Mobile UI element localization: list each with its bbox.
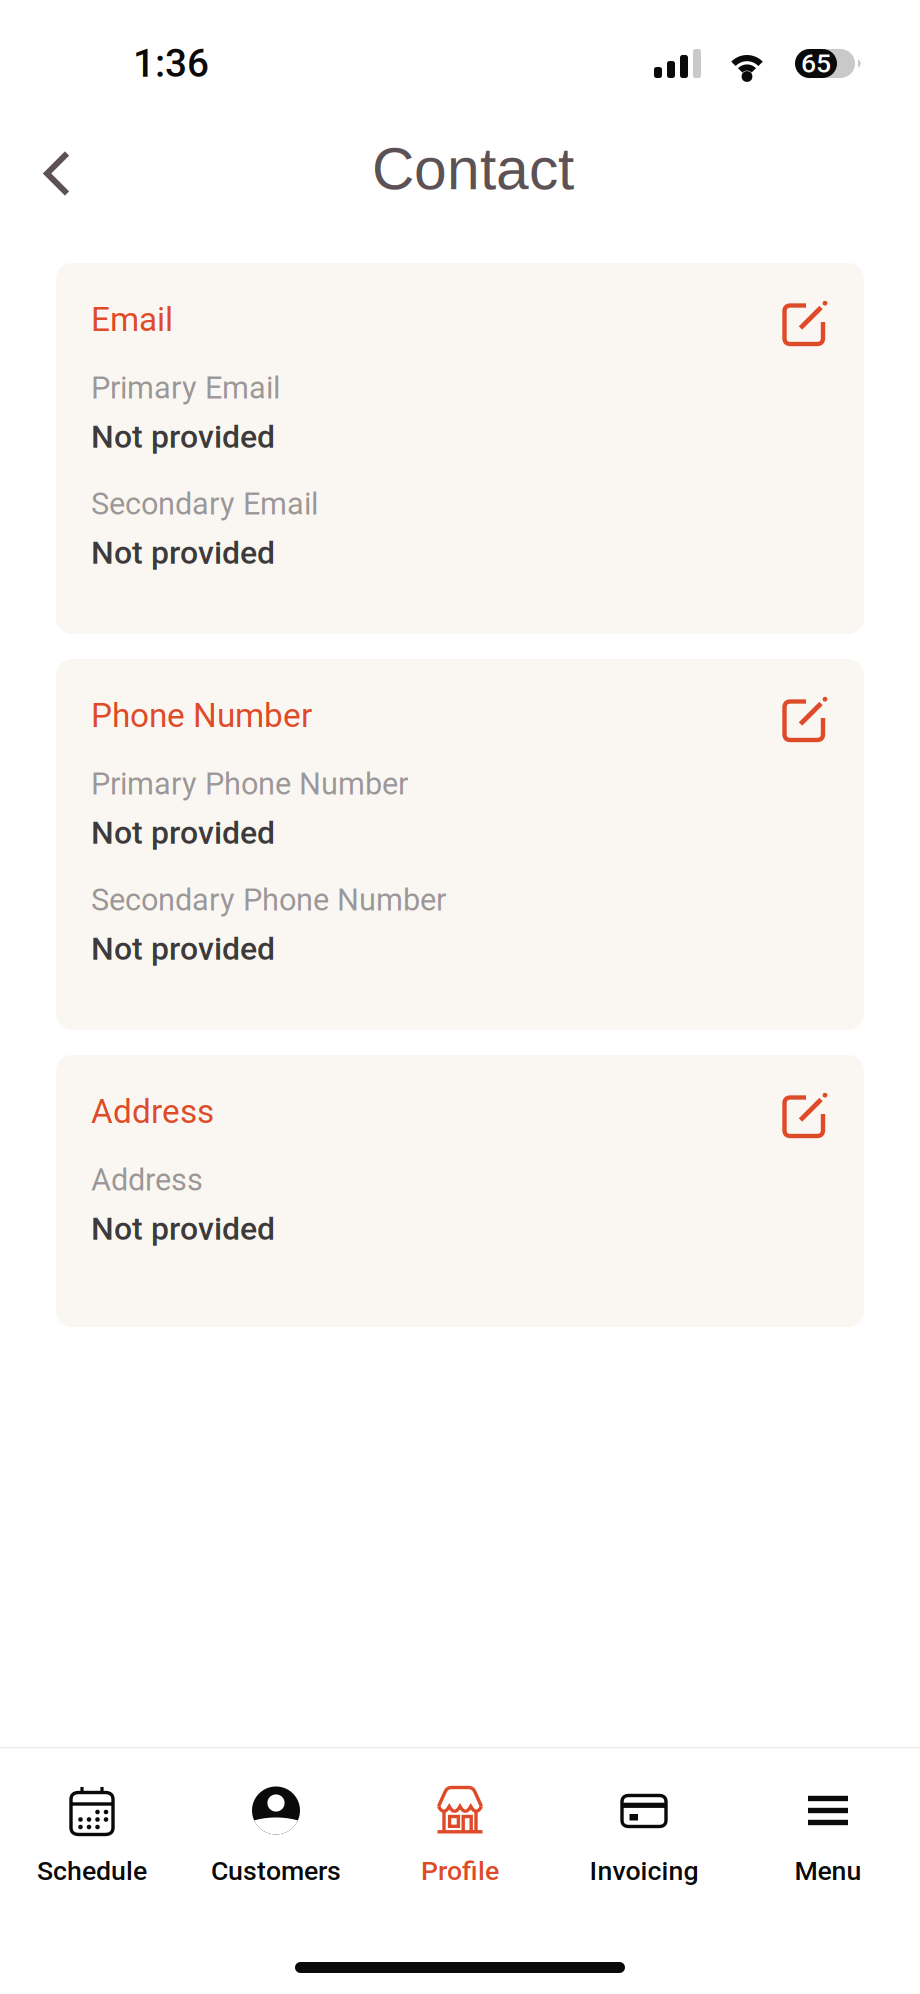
staticText: 65 <box>801 48 831 79</box>
button[interactable]: Invoicing <box>552 1748 736 1886</box>
staticText: Secondary Phone Number <box>91 882 446 918</box>
button[interactable]: Edit Address <box>774 1082 834 1142</box>
button[interactable]: Edit Email <box>774 290 834 350</box>
staticText: Primary Phone Number <box>91 766 408 802</box>
staticText: Not provided <box>91 814 275 851</box>
button[interactable]: Profile <box>368 1748 552 1886</box>
staticText: 1:36 <box>133 41 209 86</box>
staticText: Customers <box>211 1855 341 1886</box>
staticText: Not provided <box>91 930 275 967</box>
staticText: Contact <box>372 136 574 202</box>
staticText: Schedule <box>37 1855 147 1886</box>
button[interactable]: Schedule <box>0 1748 184 1886</box>
button[interactable]: Menu <box>736 1748 920 1886</box>
staticText: Invoicing <box>589 1855 698 1886</box>
staticText: Menu <box>794 1855 861 1886</box>
button[interactable]: Customers <box>184 1748 368 1886</box>
staticText: Profile <box>421 1855 499 1886</box>
staticText: Not provided <box>91 534 275 571</box>
button[interactable]: Back <box>26 136 88 210</box>
staticText: Not provided <box>91 418 275 455</box>
staticText: Not provided <box>91 1210 275 1247</box>
button[interactable]: Edit Phone Number <box>774 686 834 746</box>
staticText: Primary Email <box>91 370 280 406</box>
staticText: Secondary Email <box>91 486 318 522</box>
staticText: Address <box>91 1162 203 1198</box>
staticText: Email <box>91 300 173 339</box>
staticText: Address <box>91 1092 214 1131</box>
staticText: Phone Number <box>91 696 312 735</box>
